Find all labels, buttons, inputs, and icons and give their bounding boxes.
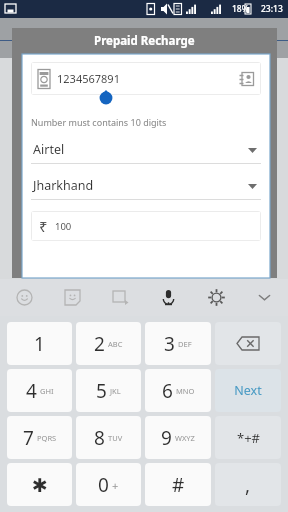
- staticText: +: [112, 478, 119, 493]
- staticText: 8: [94, 425, 105, 451]
- button[interactable]: Stickers: [48, 279, 96, 316]
- button[interactable]: 2: [76, 322, 141, 365]
- staticText: ✱: [32, 474, 48, 496]
- button[interactable]: 9: [145, 416, 211, 459]
- staticText: 1: [34, 331, 45, 357]
- button[interactable]: #: [145, 463, 211, 506]
- button[interactable]: Emoji: [0, 279, 48, 316]
- staticText: 7: [23, 425, 34, 451]
- staticText: 1234567891: [57, 71, 120, 86]
- staticText: ,: [245, 472, 251, 498]
- staticText: 0: [98, 472, 109, 498]
- button[interactable]: ₹: [31, 211, 261, 241]
- button[interactable]: Backspace: [215, 322, 281, 365]
- button[interactable]: 1: [7, 322, 72, 365]
- staticText: 3: [164, 331, 175, 357]
- staticText: PQRS: [37, 433, 57, 443]
- staticText: 4: [26, 378, 37, 404]
- staticText: ₹: [39, 216, 48, 236]
- staticText: 18%: [232, 3, 249, 15]
- staticText: #: [172, 472, 185, 498]
- staticText: JKL: [110, 386, 121, 396]
- button[interactable]: Voice input: [144, 279, 192, 316]
- staticText: Prepaid Recharge: [94, 33, 195, 49]
- staticText: ABC: [108, 339, 123, 349]
- staticText: DEF: [178, 339, 192, 349]
- button[interactable]: Pick from contacts: [239, 71, 255, 87]
- staticText: Next: [234, 382, 262, 399]
- button[interactable]: 5: [76, 369, 141, 412]
- button[interactable]: 0: [76, 463, 141, 506]
- staticText: Jharkhand: [33, 177, 94, 194]
- staticText: Number must contains 10 digits: [31, 116, 167, 128]
- staticText: 9: [161, 425, 172, 451]
- button[interactable]: GIF: [96, 279, 144, 316]
- staticText: MNO: [176, 386, 195, 396]
- staticText: 5: [96, 378, 107, 404]
- staticText: WXYZ: [175, 433, 195, 443]
- staticText: GHI: [40, 386, 54, 396]
- button[interactable]: 8: [76, 416, 141, 459]
- button[interactable]: ,: [215, 463, 281, 506]
- staticText: 2: [94, 331, 105, 357]
- staticText: Airtel: [33, 141, 65, 158]
- button[interactable]: Jharkhand: [31, 177, 261, 200]
- staticText: 100: [55, 220, 72, 233]
- button[interactable]: 4: [7, 369, 72, 412]
- button[interactable]: Hide keyboard: [240, 279, 288, 316]
- button[interactable]: 3: [145, 322, 211, 365]
- staticText: 6: [162, 378, 173, 404]
- button[interactable]: Airtel: [31, 141, 261, 164]
- button[interactable]: 6: [145, 369, 211, 412]
- button[interactable]: Next: [215, 369, 281, 412]
- staticText: TUV: [108, 433, 123, 443]
- staticText: *+#: [237, 429, 260, 447]
- button[interactable]: *+#: [215, 416, 281, 459]
- button[interactable]: 7: [7, 416, 72, 459]
- button[interactable]: 1234567891: [31, 62, 261, 95]
- button[interactable]: Settings: [192, 279, 240, 316]
- staticText: 23:13: [261, 3, 283, 15]
- button[interactable]: ✱: [7, 463, 72, 506]
